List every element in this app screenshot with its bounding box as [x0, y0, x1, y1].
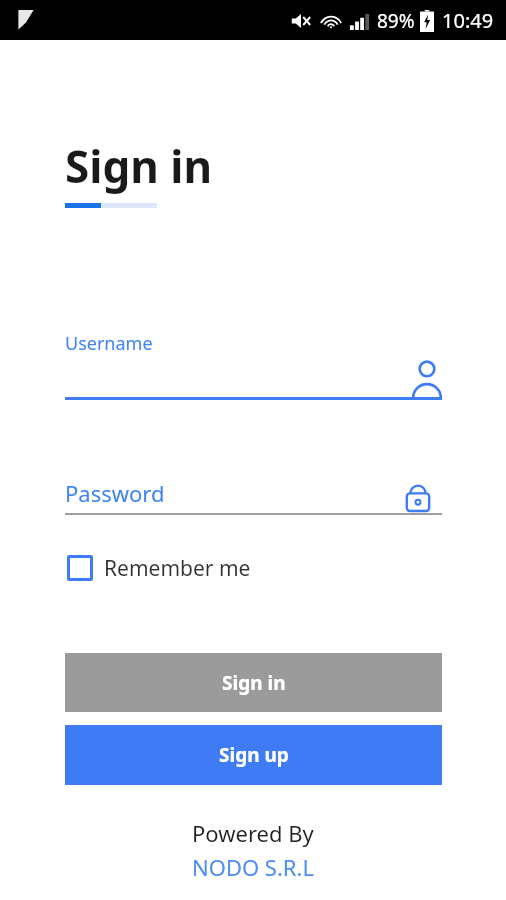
staticText: Remember me	[104, 554, 251, 583]
staticText: Sign in	[65, 136, 213, 196]
staticText: 89%	[377, 8, 415, 34]
staticText: Password	[65, 478, 165, 508]
staticText: 10:49	[442, 7, 494, 34]
button[interactable]: Sign in	[65, 653, 442, 712]
staticText: Sign up	[219, 742, 289, 768]
button[interactable]: Sign up	[65, 725, 442, 785]
button[interactable]: Password	[398, 472, 438, 514]
button[interactable]: NODO S.R.L	[192, 852, 314, 882]
staticText: Sign in	[222, 670, 286, 696]
button[interactable]: Username	[406, 357, 448, 399]
staticText: Powered By	[192, 818, 314, 848]
staticText: NODO S.R.L	[192, 852, 314, 882]
button[interactable]: Remember me	[63, 550, 251, 586]
staticText: Username	[65, 331, 153, 356]
